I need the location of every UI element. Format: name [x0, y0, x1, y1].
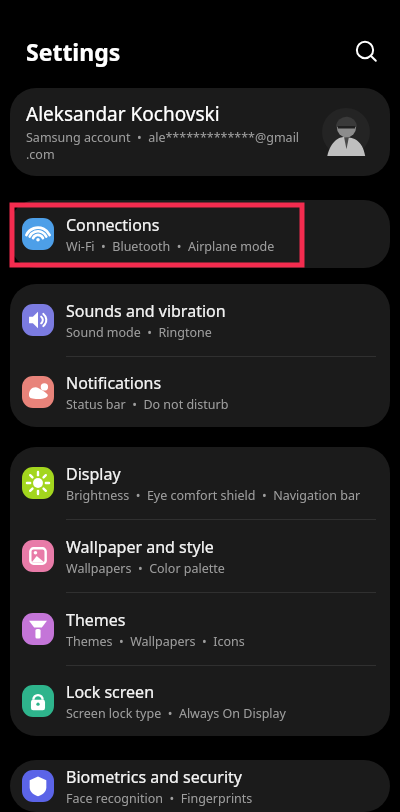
- staticText: Connections: [66, 214, 160, 236]
- button[interactable]: Aleksandar Kochovski: [10, 88, 390, 176]
- button[interactable]: Wallpaper and style: [10, 520, 390, 592]
- staticText: Wallpapers • Color palette: [66, 560, 225, 577]
- button[interactable]: Lock screen: [10, 666, 390, 736]
- button[interactable]: Biometrics and security: [10, 760, 390, 812]
- staticText: Face recognition • Fingerprints: [66, 790, 253, 807]
- button[interactable]: Connections: [10, 200, 390, 268]
- staticText: Notifications: [66, 372, 162, 394]
- button[interactable]: Sounds and vibration: [10, 284, 390, 356]
- staticText: Screen lock type • Always On Display: [66, 705, 286, 722]
- staticText: Themes • Wallpapers • Icons: [66, 633, 245, 650]
- staticText: Wallpaper and style: [66, 536, 214, 558]
- staticText: Brightness • Eye comfort shield • Naviga…: [66, 487, 361, 504]
- staticText: Lock screen: [66, 681, 155, 703]
- staticText: Wi-Fi • Bluetooth • Airplane mode: [66, 238, 275, 255]
- button[interactable]: Notifications: [10, 357, 390, 427]
- staticText: Settings: [26, 36, 121, 67]
- staticText: Display: [66, 463, 121, 485]
- staticText: Sounds and vibration: [66, 300, 226, 322]
- staticText: Samsung account • ale*************@gmail…: [26, 129, 300, 163]
- staticText: Themes: [66, 609, 126, 631]
- staticText: Biometrics and security: [66, 766, 243, 788]
- staticText: Status bar • Do not disturb: [66, 396, 229, 413]
- button[interactable]: Themes: [10, 593, 390, 665]
- button[interactable]: Display: [10, 447, 390, 519]
- staticText: Sound mode • Ringtone: [66, 324, 212, 341]
- button[interactable]: Search: [344, 29, 388, 73]
- staticText: Aleksandar Kochovski: [26, 101, 220, 127]
